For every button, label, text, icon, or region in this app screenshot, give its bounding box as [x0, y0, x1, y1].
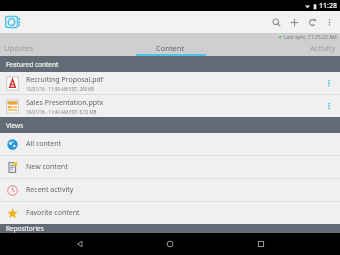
staticText: All content	[26, 139, 62, 149]
staticText: Recruiting Proposal.pdf	[26, 75, 104, 85]
button[interactable]: All content	[0, 133, 340, 155]
staticText: Views	[6, 121, 24, 130]
button[interactable]: Recruiting Proposal.pdf	[0, 72, 340, 94]
staticText: 11:28	[319, 1, 337, 11]
staticText: Repositories	[6, 224, 44, 233]
button[interactable]: Content	[114, 42, 227, 56]
button[interactable]: Updates	[0, 42, 114, 56]
staticText: Last sync: 11:25:25 AM	[284, 34, 337, 41]
button[interactable]: New content	[0, 156, 340, 178]
staticText: Favorite content	[26, 208, 80, 218]
button[interactable]: Item options	[323, 77, 335, 89]
staticText: Recent activity	[26, 185, 74, 195]
staticText: Activity	[310, 43, 336, 53]
staticText: Featured content	[6, 60, 59, 69]
button[interactable]: Item options	[323, 100, 335, 112]
button[interactable]: App logo	[5, 14, 21, 30]
button[interactable]: Recent apps	[250, 233, 272, 255]
button[interactable]: Recent activity	[0, 179, 340, 201]
staticText: New content	[26, 162, 68, 172]
button[interactable]: Sales Presentation.pptx	[0, 95, 340, 117]
staticText: Updates	[4, 43, 34, 53]
button[interactable]: Back	[69, 233, 91, 255]
button[interactable]: More options	[322, 15, 336, 29]
button[interactable]: Favorite content	[0, 202, 340, 224]
staticText: 10/21/16 · 11:40 AM EDT, 6.72 MB	[26, 109, 97, 115]
button[interactable]: Add	[287, 15, 301, 29]
staticText: Sales Presentation.pptx	[26, 98, 104, 108]
staticText: Content	[156, 43, 185, 53]
button[interactable]: Home	[159, 233, 181, 255]
button[interactable]: Search	[269, 15, 283, 29]
button[interactable]: Activity	[227, 42, 340, 56]
staticText: 10/21/16 · 11:39 AM EDT, 269 KB	[26, 86, 94, 92]
button[interactable]: Refresh	[305, 15, 319, 29]
